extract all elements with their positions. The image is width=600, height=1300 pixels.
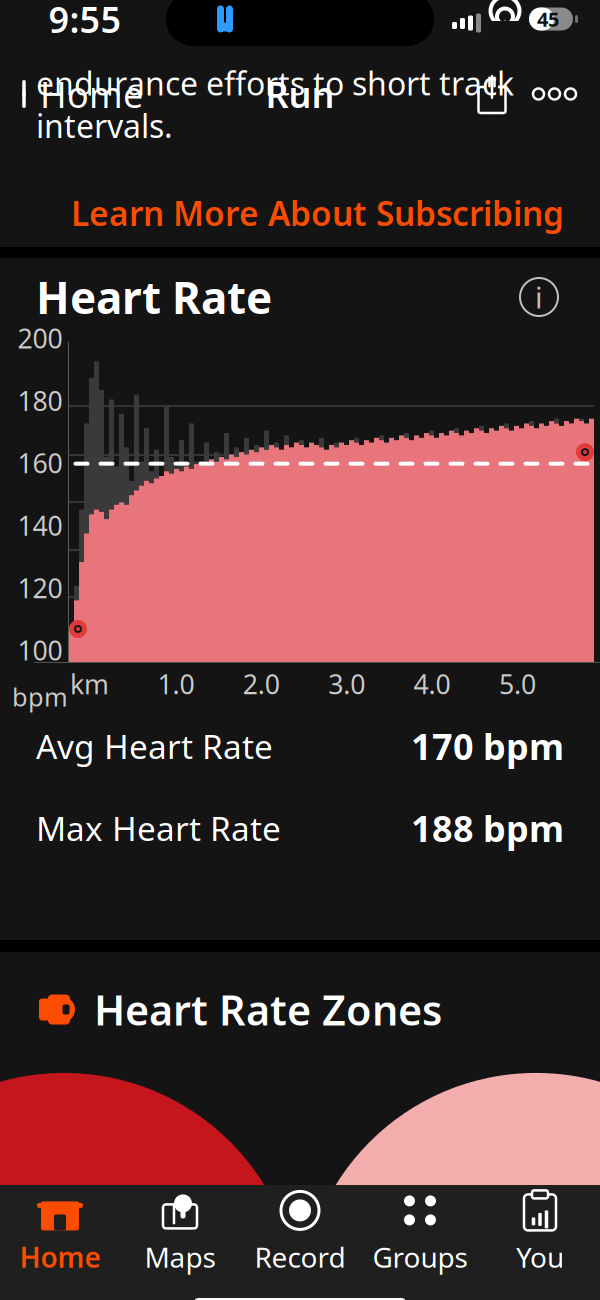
staticText: Home [19, 1238, 100, 1276]
staticText: Run [265, 70, 334, 118]
staticText: 5.0 [499, 666, 536, 702]
button[interactable]: Heart Rate Zones [0, 974, 600, 1045]
button[interactable]: Learn More About Subscribing [0, 185, 600, 241]
staticText: 1.0 [157, 666, 194, 702]
staticText: Record [254, 1238, 345, 1276]
button[interactable]: Share [465, 69, 519, 119]
button[interactable]: Record [240, 1190, 360, 1276]
staticText: 45 [537, 6, 559, 32]
staticText: 140 [17, 508, 62, 543]
button[interactable]: Home [0, 62, 143, 126]
staticText: Maps [144, 1238, 215, 1276]
staticText: 180 [17, 383, 62, 418]
staticText: 100 [17, 632, 62, 668]
button[interactable]: You [480, 1190, 600, 1276]
staticText: You [516, 1238, 564, 1276]
staticText: bpm [12, 680, 68, 713]
button[interactable]: Groups [360, 1190, 480, 1276]
staticText: Groups [372, 1238, 467, 1276]
staticText: Home [40, 70, 143, 118]
staticText: 170 bpm [411, 722, 564, 770]
staticText: Avg Heart Rate [36, 724, 273, 768]
staticText: 200 [17, 320, 62, 356]
staticText: km [70, 666, 109, 702]
staticText: 188 bpm [411, 804, 564, 852]
staticText: endurance efforts to short track interva… [36, 62, 514, 147]
staticText: 3.0 [328, 666, 365, 702]
staticText: Learn More About Subscribing [71, 191, 564, 235]
button[interactable]: Heart rate info [514, 271, 564, 322]
staticText: 9:55 [48, 0, 121, 43]
staticText: 4.0 [414, 666, 451, 702]
button[interactable]: Home [0, 1190, 120, 1276]
staticText: Max Heart Rate [36, 806, 281, 850]
staticText: 160 [17, 445, 62, 481]
staticText: i [535, 277, 543, 316]
button[interactable]: More options [519, 74, 590, 113]
button[interactable]: Maps [120, 1190, 240, 1276]
staticText: Heart Rate [36, 268, 272, 326]
staticText: 2.0 [243, 666, 280, 702]
staticText: 120 [17, 570, 62, 605]
staticText: Heart Rate Zones [94, 982, 442, 1037]
